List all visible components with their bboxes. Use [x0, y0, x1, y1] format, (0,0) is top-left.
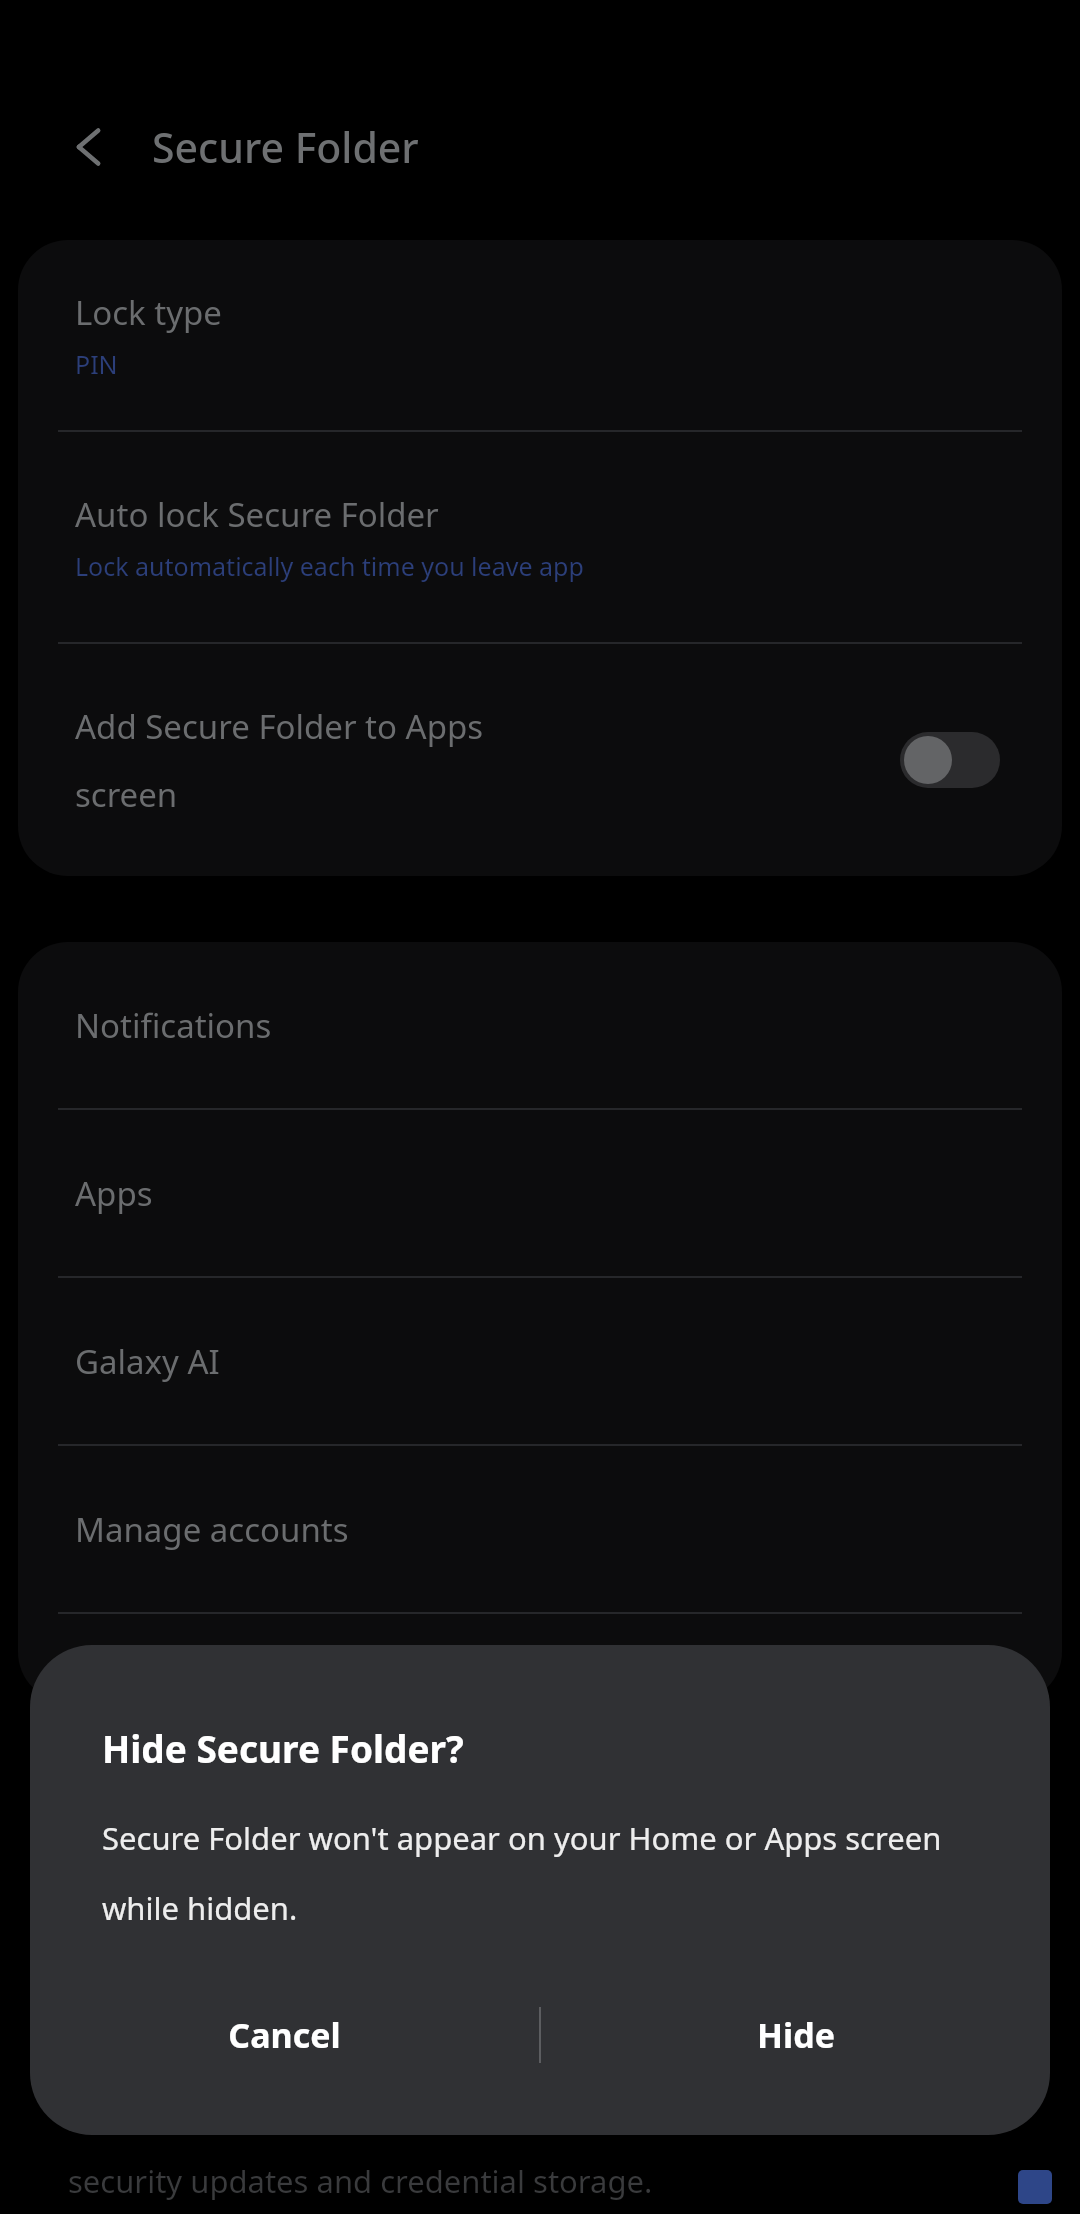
button[interactable]: Manage accounts — [18, 1446, 1062, 1612]
staticText: security updates and credential storage. — [68, 2160, 653, 2202]
staticText: Manage accounts — [75, 1507, 349, 1552]
staticText: Hide — [757, 2012, 835, 2058]
staticText: Secure Folder — [152, 119, 419, 175]
staticText: Add Secure Folder to Apps screen — [75, 704, 884, 817]
staticText: Galaxy AI — [75, 1339, 220, 1384]
button[interactable]: Add Secure Folder to Apps screen — [900, 732, 1000, 788]
button[interactable]: Add Secure Folder to Apps screen — [18, 644, 1062, 876]
staticText: Secure Folder won't appear on your Home … — [102, 1817, 978, 1929]
staticText: Apps — [75, 1171, 153, 1216]
button[interactable]: Back — [50, 108, 128, 186]
button[interactable]: Apps — [18, 1110, 1062, 1276]
button[interactable]: Auto lock Secure Folder — [18, 432, 1062, 642]
staticText: Cancel — [228, 2012, 341, 2058]
button[interactable]: Hide — [541, 1965, 1050, 2105]
staticText: Hide Secure Folder? — [102, 1723, 464, 1773]
button[interactable]: Cancel — [30, 1965, 539, 2105]
button[interactable]: Lock type — [18, 240, 1062, 430]
staticText: Lock automatically each time you leave a… — [75, 549, 584, 583]
staticText: PIN — [75, 347, 118, 381]
button[interactable]: Galaxy AI — [18, 1278, 1062, 1444]
staticText: Notifications — [75, 1003, 272, 1048]
staticText: Lock type — [75, 290, 222, 335]
staticText: Auto lock Secure Folder — [75, 492, 439, 537]
button[interactable]: Notifications — [18, 942, 1062, 1108]
